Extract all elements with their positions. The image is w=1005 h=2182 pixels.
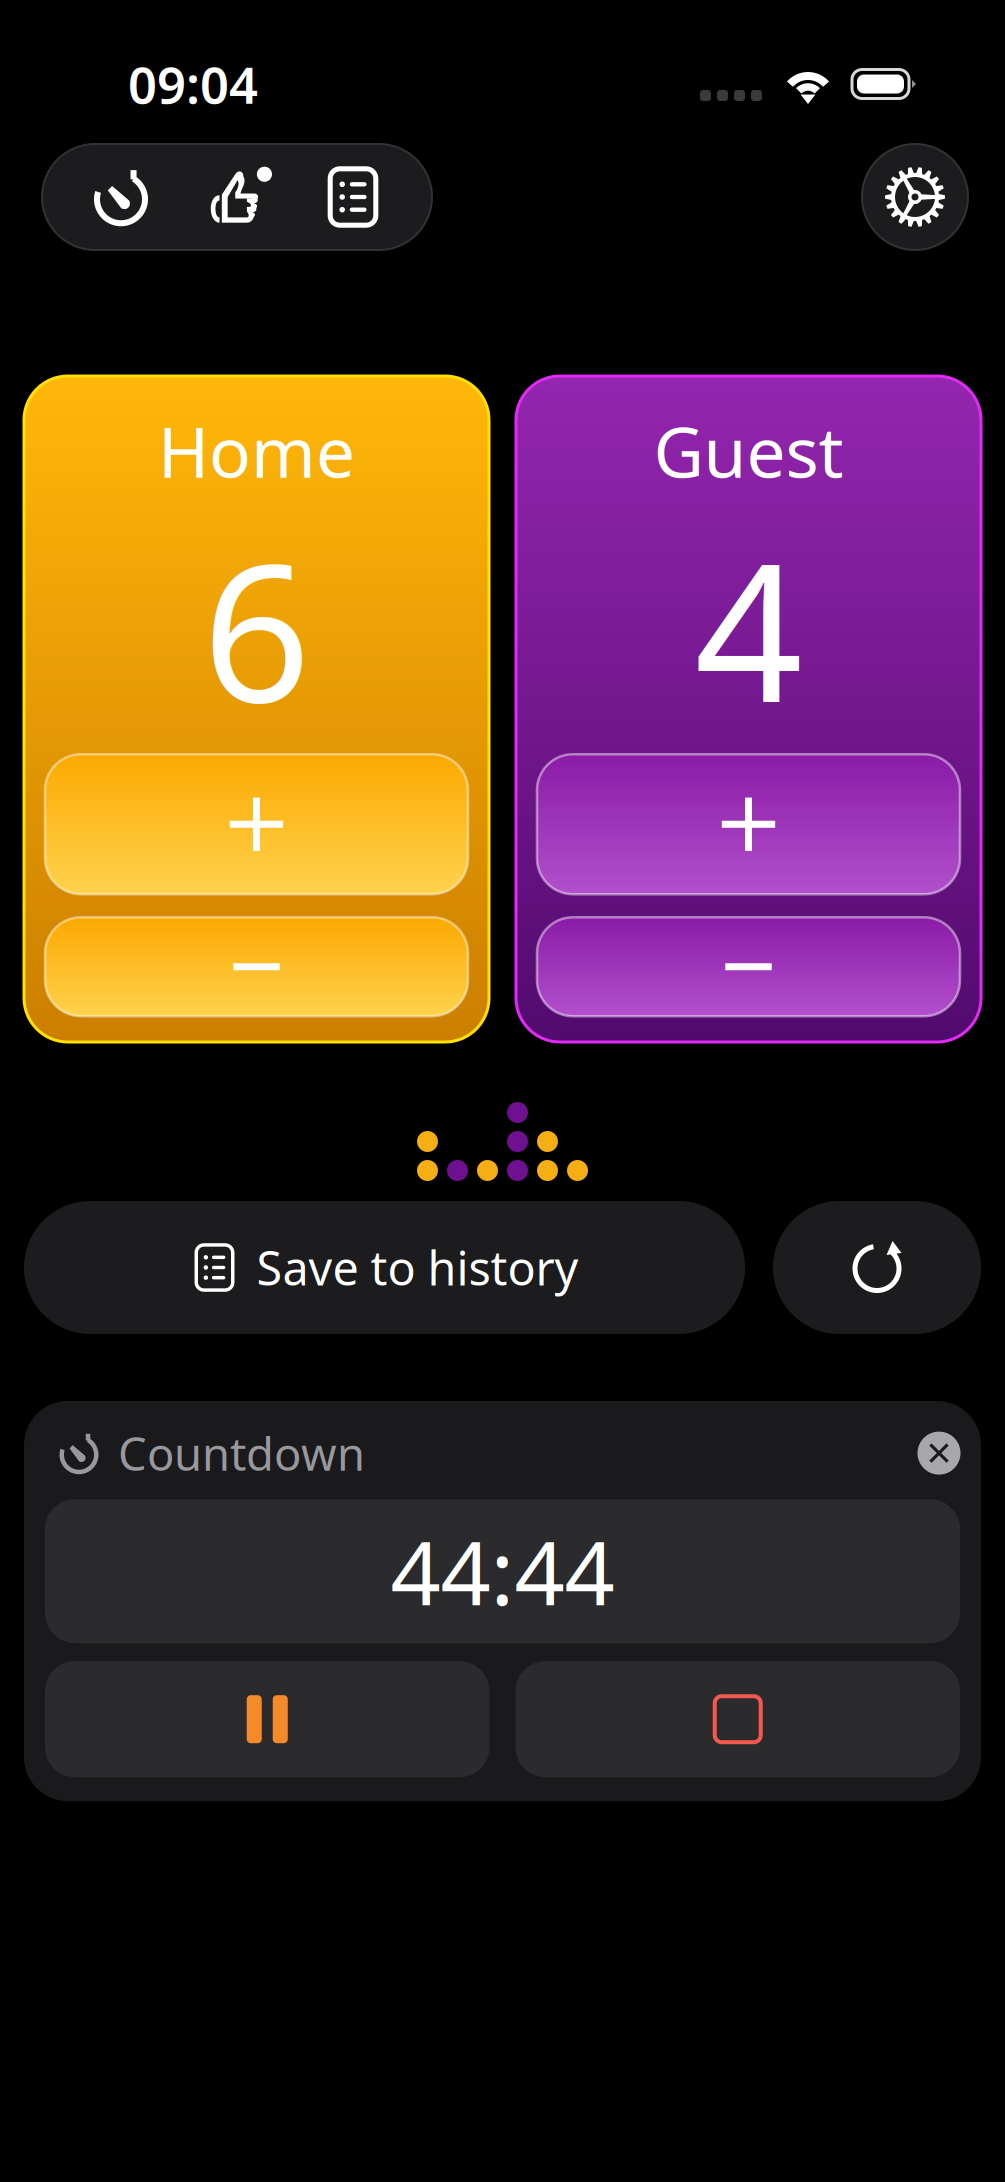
button[interactable]: [45, 754, 468, 894]
staticText: Guest: [653, 405, 843, 497]
button[interactable]: Pause: [45, 1661, 489, 1777]
button[interactable]: Stop: [515, 1661, 960, 1777]
button[interactable]: [45, 917, 468, 1016]
staticText: Countdown: [118, 1423, 365, 1483]
staticText: 4: [694, 503, 802, 754]
button[interactable]: Fouls: [179, 144, 295, 250]
staticText: 09:04: [128, 50, 258, 118]
staticText: Home: [158, 405, 355, 497]
staticText: 44:44: [390, 1513, 614, 1630]
button[interactable]: History: [295, 144, 411, 250]
button[interactable]: [537, 754, 960, 894]
button[interactable]: Save to history: [24, 1201, 745, 1334]
button[interactable]: Close countdown: [909, 1423, 969, 1483]
button[interactable]: Reset: [773, 1201, 981, 1334]
button[interactable]: Timer: [63, 144, 179, 250]
button[interactable]: [537, 917, 960, 1016]
button[interactable]: Settings: [862, 144, 968, 250]
staticText: Save to history: [256, 1236, 578, 1298]
staticText: 6: [202, 503, 310, 754]
